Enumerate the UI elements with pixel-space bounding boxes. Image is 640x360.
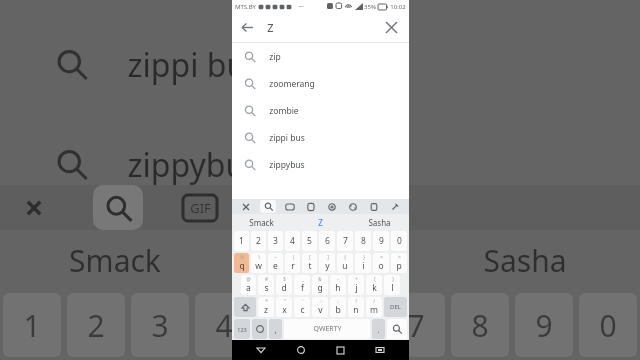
staticText: 4 <box>215 305 233 346</box>
button[interactable]: 5 <box>302 231 317 251</box>
staticText: m <box>370 304 378 316</box>
staticText: 0 <box>599 305 617 346</box>
button[interactable]: 123 <box>234 319 250 339</box>
button[interactable]: / <box>366 297 382 317</box>
button[interactable]: Back <box>232 13 262 42</box>
staticText: v <box>318 304 323 316</box>
button[interactable]: zip <box>232 43 409 70</box>
button[interactable]: 2 <box>251 231 266 251</box>
button[interactable]: ~ <box>268 253 283 273</box>
staticText: k <box>372 282 377 294</box>
button[interactable]: & <box>312 275 328 295</box>
button[interactable]: Sasha <box>350 214 409 230</box>
button[interactable]: _ <box>294 275 310 295</box>
button[interactable]: Pin <box>388 200 402 214</box>
staticText: # <box>265 276 268 282</box>
button[interactable]: % <box>234 253 249 273</box>
button[interactable]: [ <box>302 253 317 273</box>
staticText: { <box>344 254 346 260</box>
button[interactable]: ) <box>384 275 400 295</box>
staticText: Z <box>318 217 323 228</box>
button[interactable]: Recents <box>330 340 350 360</box>
button[interactable]: 1 <box>234 231 249 251</box>
staticText: zippybus <box>269 159 305 171</box>
button[interactable]: # <box>258 275 274 295</box>
button[interactable]: Search <box>260 200 276 213</box>
button[interactable]: Clear <box>376 13 406 42</box>
button[interactable]: } <box>355 253 371 273</box>
staticText: " <box>284 298 286 304</box>
staticText: 6 <box>325 235 330 247</box>
button[interactable]: $ <box>276 275 292 295</box>
button[interactable]: Home <box>291 340 311 360</box>
staticText: 10:02 <box>390 3 406 11</box>
staticText: DEL <box>390 303 401 311</box>
button[interactable]: ] <box>319 253 335 273</box>
button[interactable]: < <box>373 253 389 273</box>
button[interactable]: Search <box>387 319 407 339</box>
staticText: n <box>353 304 359 316</box>
staticText: 5 <box>279 305 297 346</box>
button[interactable]: 9 <box>373 231 389 251</box>
button[interactable]: 7 <box>337 231 353 251</box>
button[interactable]: , <box>269 319 282 339</box>
staticText: | <box>292 254 295 260</box>
staticText: @ <box>246 276 251 282</box>
button[interactable]: @ <box>241 275 256 295</box>
button[interactable]: DEL <box>384 297 407 317</box>
button[interactable]: Back <box>251 340 271 360</box>
staticText: l <box>391 282 394 294</box>
button[interactable]: . <box>372 319 385 339</box>
button[interactable]: zoomerang <box>232 70 409 97</box>
button[interactable]: Stickers <box>304 200 318 214</box>
button[interactable]: { <box>337 253 353 273</box>
button[interactable]: Space <box>284 319 370 339</box>
button[interactable]: Shift <box>234 297 256 317</box>
staticText: t <box>308 260 312 272</box>
button[interactable]: GIF <box>283 200 297 214</box>
button[interactable]: ' <box>294 297 310 317</box>
button[interactable]: : <box>312 297 328 317</box>
button[interactable]: + <box>348 275 364 295</box>
button[interactable]: 4 <box>285 231 300 251</box>
button[interactable]: 8 <box>355 231 371 251</box>
staticText: w <box>255 260 262 272</box>
button[interactable]: ! <box>348 297 364 317</box>
staticText: } <box>363 254 365 260</box>
button[interactable]: 3 <box>268 231 283 251</box>
staticText: ( <box>374 276 376 282</box>
button[interactable]: " <box>276 297 292 317</box>
button[interactable]: Clipboard <box>367 200 381 214</box>
button[interactable]: * <box>258 297 274 317</box>
button[interactable]: Settings <box>325 200 339 214</box>
button[interactable]: | <box>285 253 300 273</box>
staticText: & <box>318 276 322 282</box>
staticText: 2 <box>87 305 105 346</box>
button[interactable]: Emoji <box>252 319 267 339</box>
button[interactable]: Keyboard <box>370 340 390 360</box>
staticText: $ <box>283 276 286 282</box>
button[interactable]: Close <box>239 200 253 214</box>
staticText: e <box>273 260 278 272</box>
button[interactable]: ( <box>366 275 382 295</box>
button[interactable]: 6 <box>319 231 335 251</box>
staticText: QWERTY <box>313 324 342 334</box>
staticText: ··· <box>298 2 304 12</box>
staticText: Smack <box>69 240 161 281</box>
staticText: Sasha <box>483 240 567 281</box>
staticText: : <box>320 298 322 304</box>
button[interactable]: Z <box>291 214 350 230</box>
button[interactable]: Themes <box>346 200 360 214</box>
staticText: zippi bus <box>269 132 305 144</box>
staticText: . <box>377 324 380 335</box>
button[interactable]: zippi bus <box>232 124 409 151</box>
button[interactable]: \ <box>251 253 266 273</box>
button[interactable]: > <box>391 253 407 273</box>
button[interactable]: - <box>330 275 346 295</box>
button[interactable]: zippybus <box>232 151 409 178</box>
staticText: 3 <box>273 235 278 247</box>
button[interactable]: zombie <box>232 97 409 124</box>
button[interactable]: Smack <box>232 214 291 230</box>
button[interactable]: ; <box>330 297 346 317</box>
button[interactable]: 0 <box>391 231 407 251</box>
